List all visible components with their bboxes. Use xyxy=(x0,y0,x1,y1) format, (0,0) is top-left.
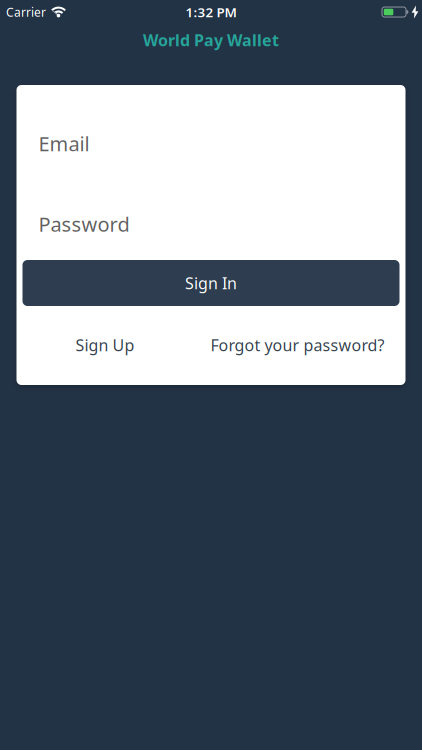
staticText: World Pay Wallet xyxy=(143,29,279,51)
staticText: Carrier xyxy=(6,4,46,20)
button[interactable]: Password xyxy=(16,212,405,236)
staticText: Email xyxy=(38,130,89,157)
button[interactable]: Sign In xyxy=(22,260,399,306)
button[interactable]: Email xyxy=(16,131,405,155)
button[interactable]: Sign Up xyxy=(75,334,134,356)
staticText: 1:32 PM xyxy=(185,3,236,21)
staticText: Sign Up xyxy=(75,334,134,356)
staticText: Sign In xyxy=(185,272,237,294)
button[interactable]: Forgot your password? xyxy=(210,334,384,356)
staticText: Forgot your password? xyxy=(210,334,384,356)
staticText: Password xyxy=(38,211,129,237)
